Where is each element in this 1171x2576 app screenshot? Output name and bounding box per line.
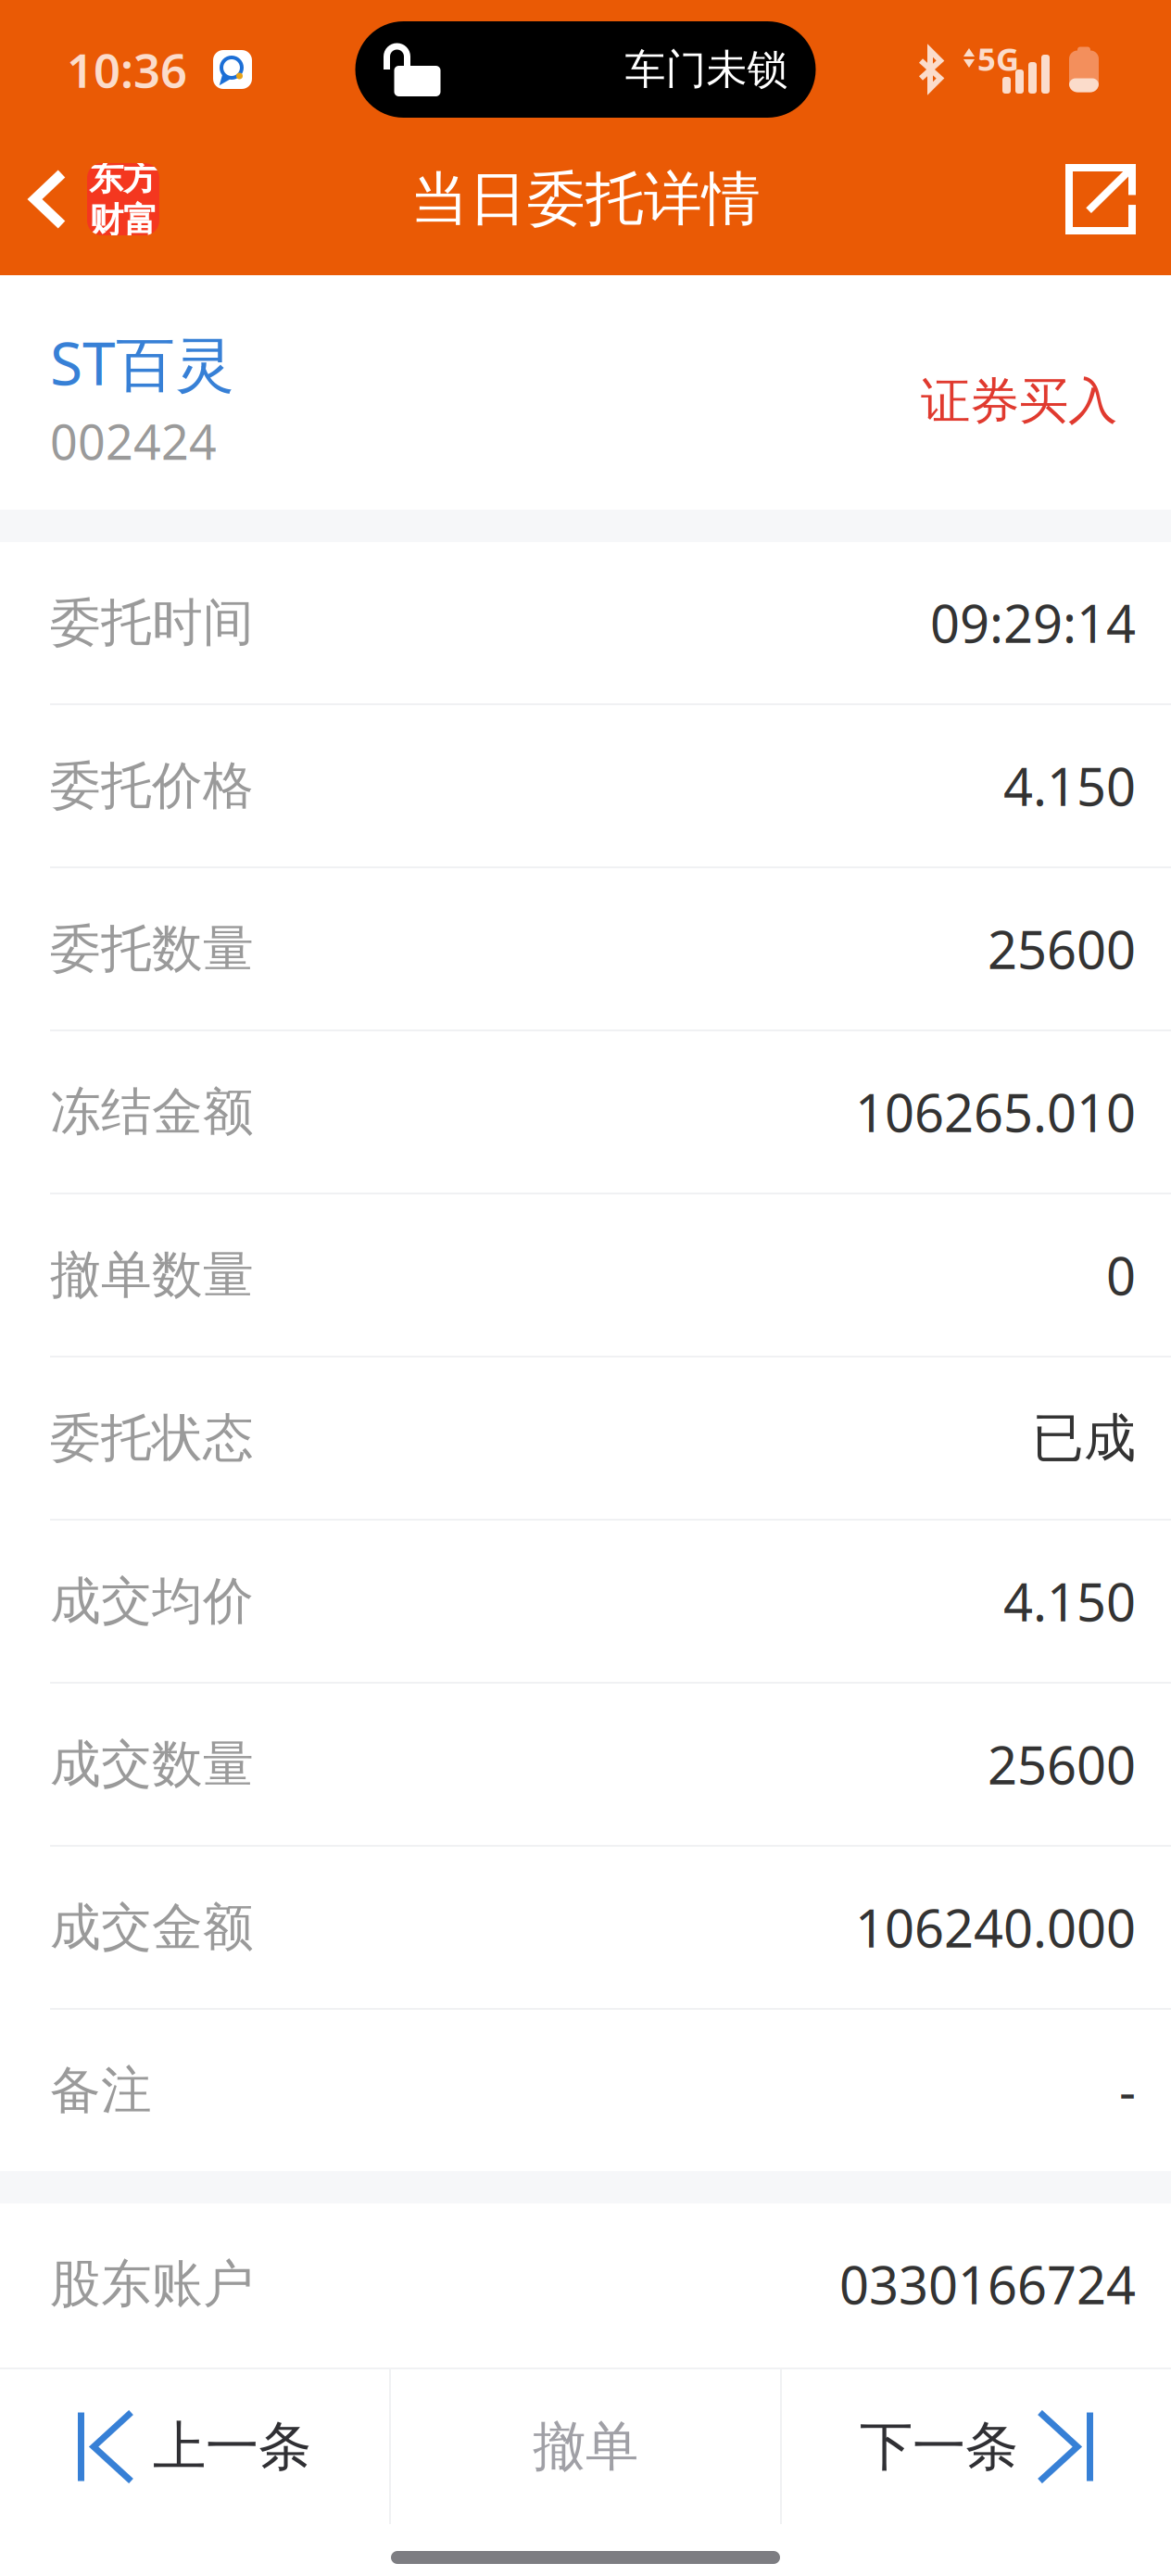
- staticText: 106265.010: [855, 1077, 1136, 1146]
- staticText: 002424: [50, 409, 217, 473]
- staticText: 东方: [89, 157, 157, 199]
- button[interactable]: Back: [0, 139, 183, 259]
- staticText: 成交金额: [50, 1896, 254, 1958]
- staticText: 冻结金额: [50, 1081, 254, 1143]
- staticText: 4.150: [1003, 1567, 1136, 1636]
- staticText: 0330166724: [839, 2250, 1136, 2319]
- button[interactable]: 上一条: [0, 2369, 389, 2524]
- button[interactable]: Share: [1025, 139, 1171, 259]
- staticText: 证券买入: [921, 371, 1117, 432]
- staticText: 成交均价: [50, 1570, 254, 1632]
- staticText: 下一条: [860, 2414, 1018, 2479]
- staticText: 09:29:14: [930, 588, 1136, 657]
- staticText: 10:36: [67, 38, 187, 101]
- staticText: -: [1119, 2056, 1136, 2125]
- staticText: 委托数量: [50, 918, 254, 980]
- staticText: 4.150: [1003, 751, 1136, 820]
- staticText: 已成: [1032, 1406, 1136, 1470]
- staticText: 财富: [89, 199, 157, 242]
- staticText: 车门未锁: [625, 44, 788, 95]
- button[interactable]: 下一条: [782, 2369, 1171, 2524]
- staticText: 备注: [50, 2059, 152, 2121]
- staticText: 5G: [977, 37, 1019, 80]
- staticText: 25600: [988, 914, 1136, 983]
- staticText: 撤单数量: [50, 1244, 254, 1306]
- staticText: 成交数量: [50, 1733, 254, 1795]
- staticText: 委托状态: [50, 1407, 254, 1469]
- staticText: 25600: [988, 1730, 1136, 1799]
- staticText: 委托价格: [50, 755, 254, 817]
- staticText: 委托时间: [50, 592, 254, 654]
- staticText: 0: [1106, 1241, 1136, 1309]
- staticText: 上一条: [153, 2414, 311, 2479]
- button[interactable]: 撤单: [391, 2369, 780, 2524]
- staticText: 106240.000: [855, 1893, 1136, 1962]
- staticText: 股东账户: [50, 2253, 254, 2315]
- staticText: ST百灵: [50, 323, 234, 402]
- staticText: 撤单: [533, 2414, 638, 2479]
- staticText: 当日委托详情: [410, 164, 761, 235]
